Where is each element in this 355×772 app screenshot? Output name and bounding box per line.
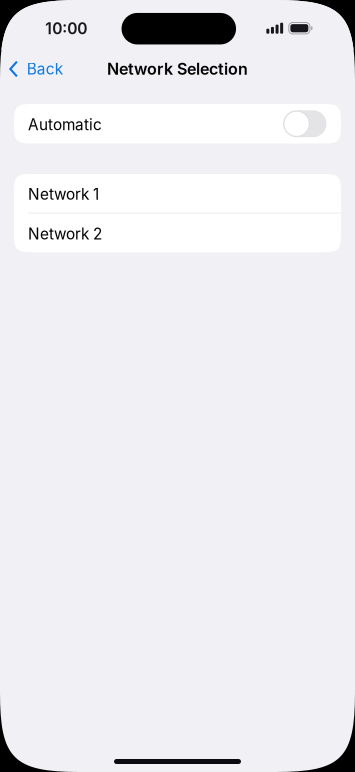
button[interactable]: Network 2 xyxy=(14,214,341,252)
staticText: Automatic xyxy=(28,115,102,134)
staticText: Back xyxy=(27,60,63,78)
staticText: Network Selection xyxy=(107,59,248,79)
button[interactable]: Automatic xyxy=(14,104,341,143)
staticText: Network 2 xyxy=(28,225,102,243)
button[interactable]: Network 1 xyxy=(14,174,341,213)
button[interactable]: Back xyxy=(0,55,63,83)
staticText: Network 1 xyxy=(28,185,99,203)
staticText: 10:00 xyxy=(45,19,87,38)
